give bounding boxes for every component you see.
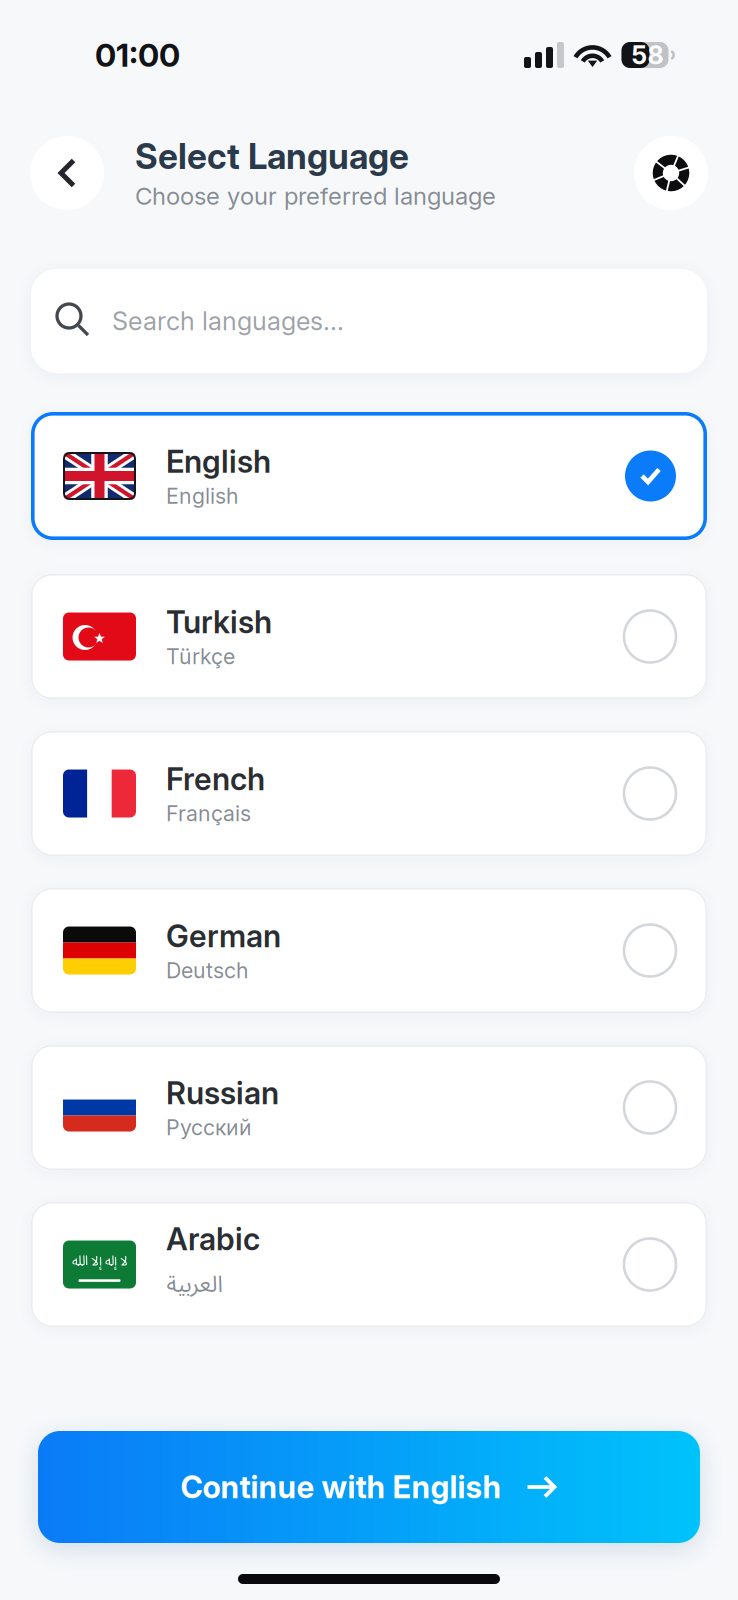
button[interactable]: Continue with English [38,1431,700,1543]
button[interactable]: German [31,888,707,1013]
staticText: English [166,483,239,509]
staticText: Turkish [166,603,272,641]
staticText: 01:00 [95,36,180,74]
staticText: English [166,443,271,480]
button[interactable]: Turkish [31,574,707,699]
staticText: لا إله إلا الله [71,1247,127,1275]
staticText: Choose your preferred language [135,181,496,210]
button[interactable]: لا إله إلا الله [31,1202,707,1327]
button[interactable]: Search languages... [31,269,707,373]
staticText: Français [166,801,251,826]
button[interactable]: English [31,412,707,542]
button[interactable]: Language [634,136,708,210]
staticText: French [166,760,265,798]
staticText: Select Language [135,135,409,177]
staticText: Русский [166,1115,252,1140]
staticText: Continue with English [180,1468,501,1505]
staticText: Deutsch [166,958,249,983]
staticText: Search languages... [112,306,344,336]
staticText: Arabic [166,1220,260,1258]
staticText: German [166,917,281,955]
staticText: Türkçe [166,644,235,669]
button[interactable]: Russian [31,1045,707,1170]
staticText: العربية [166,1261,222,1308]
button[interactable]: French [31,731,707,856]
button[interactable]: Back [30,136,104,210]
staticText: 58 [631,40,663,70]
staticText: Russian [166,1074,279,1112]
